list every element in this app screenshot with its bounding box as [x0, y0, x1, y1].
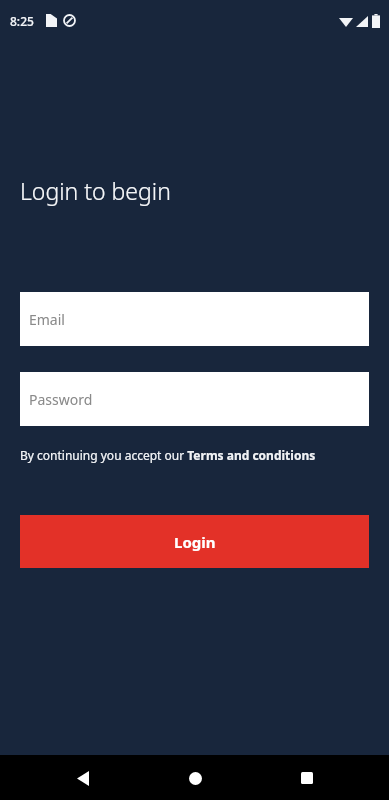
staticText: 8:25 — [10, 13, 34, 29]
button[interactable]: Home — [174, 757, 216, 799]
button[interactable]: By continuing you accept our Terms and c… — [20, 447, 316, 463]
button[interactable]: Email — [20, 292, 369, 346]
button[interactable]: Login — [20, 515, 369, 568]
staticText: Login to begin — [20, 175, 171, 206]
staticText: Login — [174, 532, 216, 552]
staticText: By continuing you accept our Terms and c… — [20, 447, 316, 463]
staticText: Email — [29, 310, 65, 329]
button[interactable]: Back — [62, 757, 104, 799]
button[interactable]: Password — [20, 372, 369, 426]
button[interactable]: Recent apps — [286, 757, 328, 799]
staticText: Password — [29, 390, 93, 409]
